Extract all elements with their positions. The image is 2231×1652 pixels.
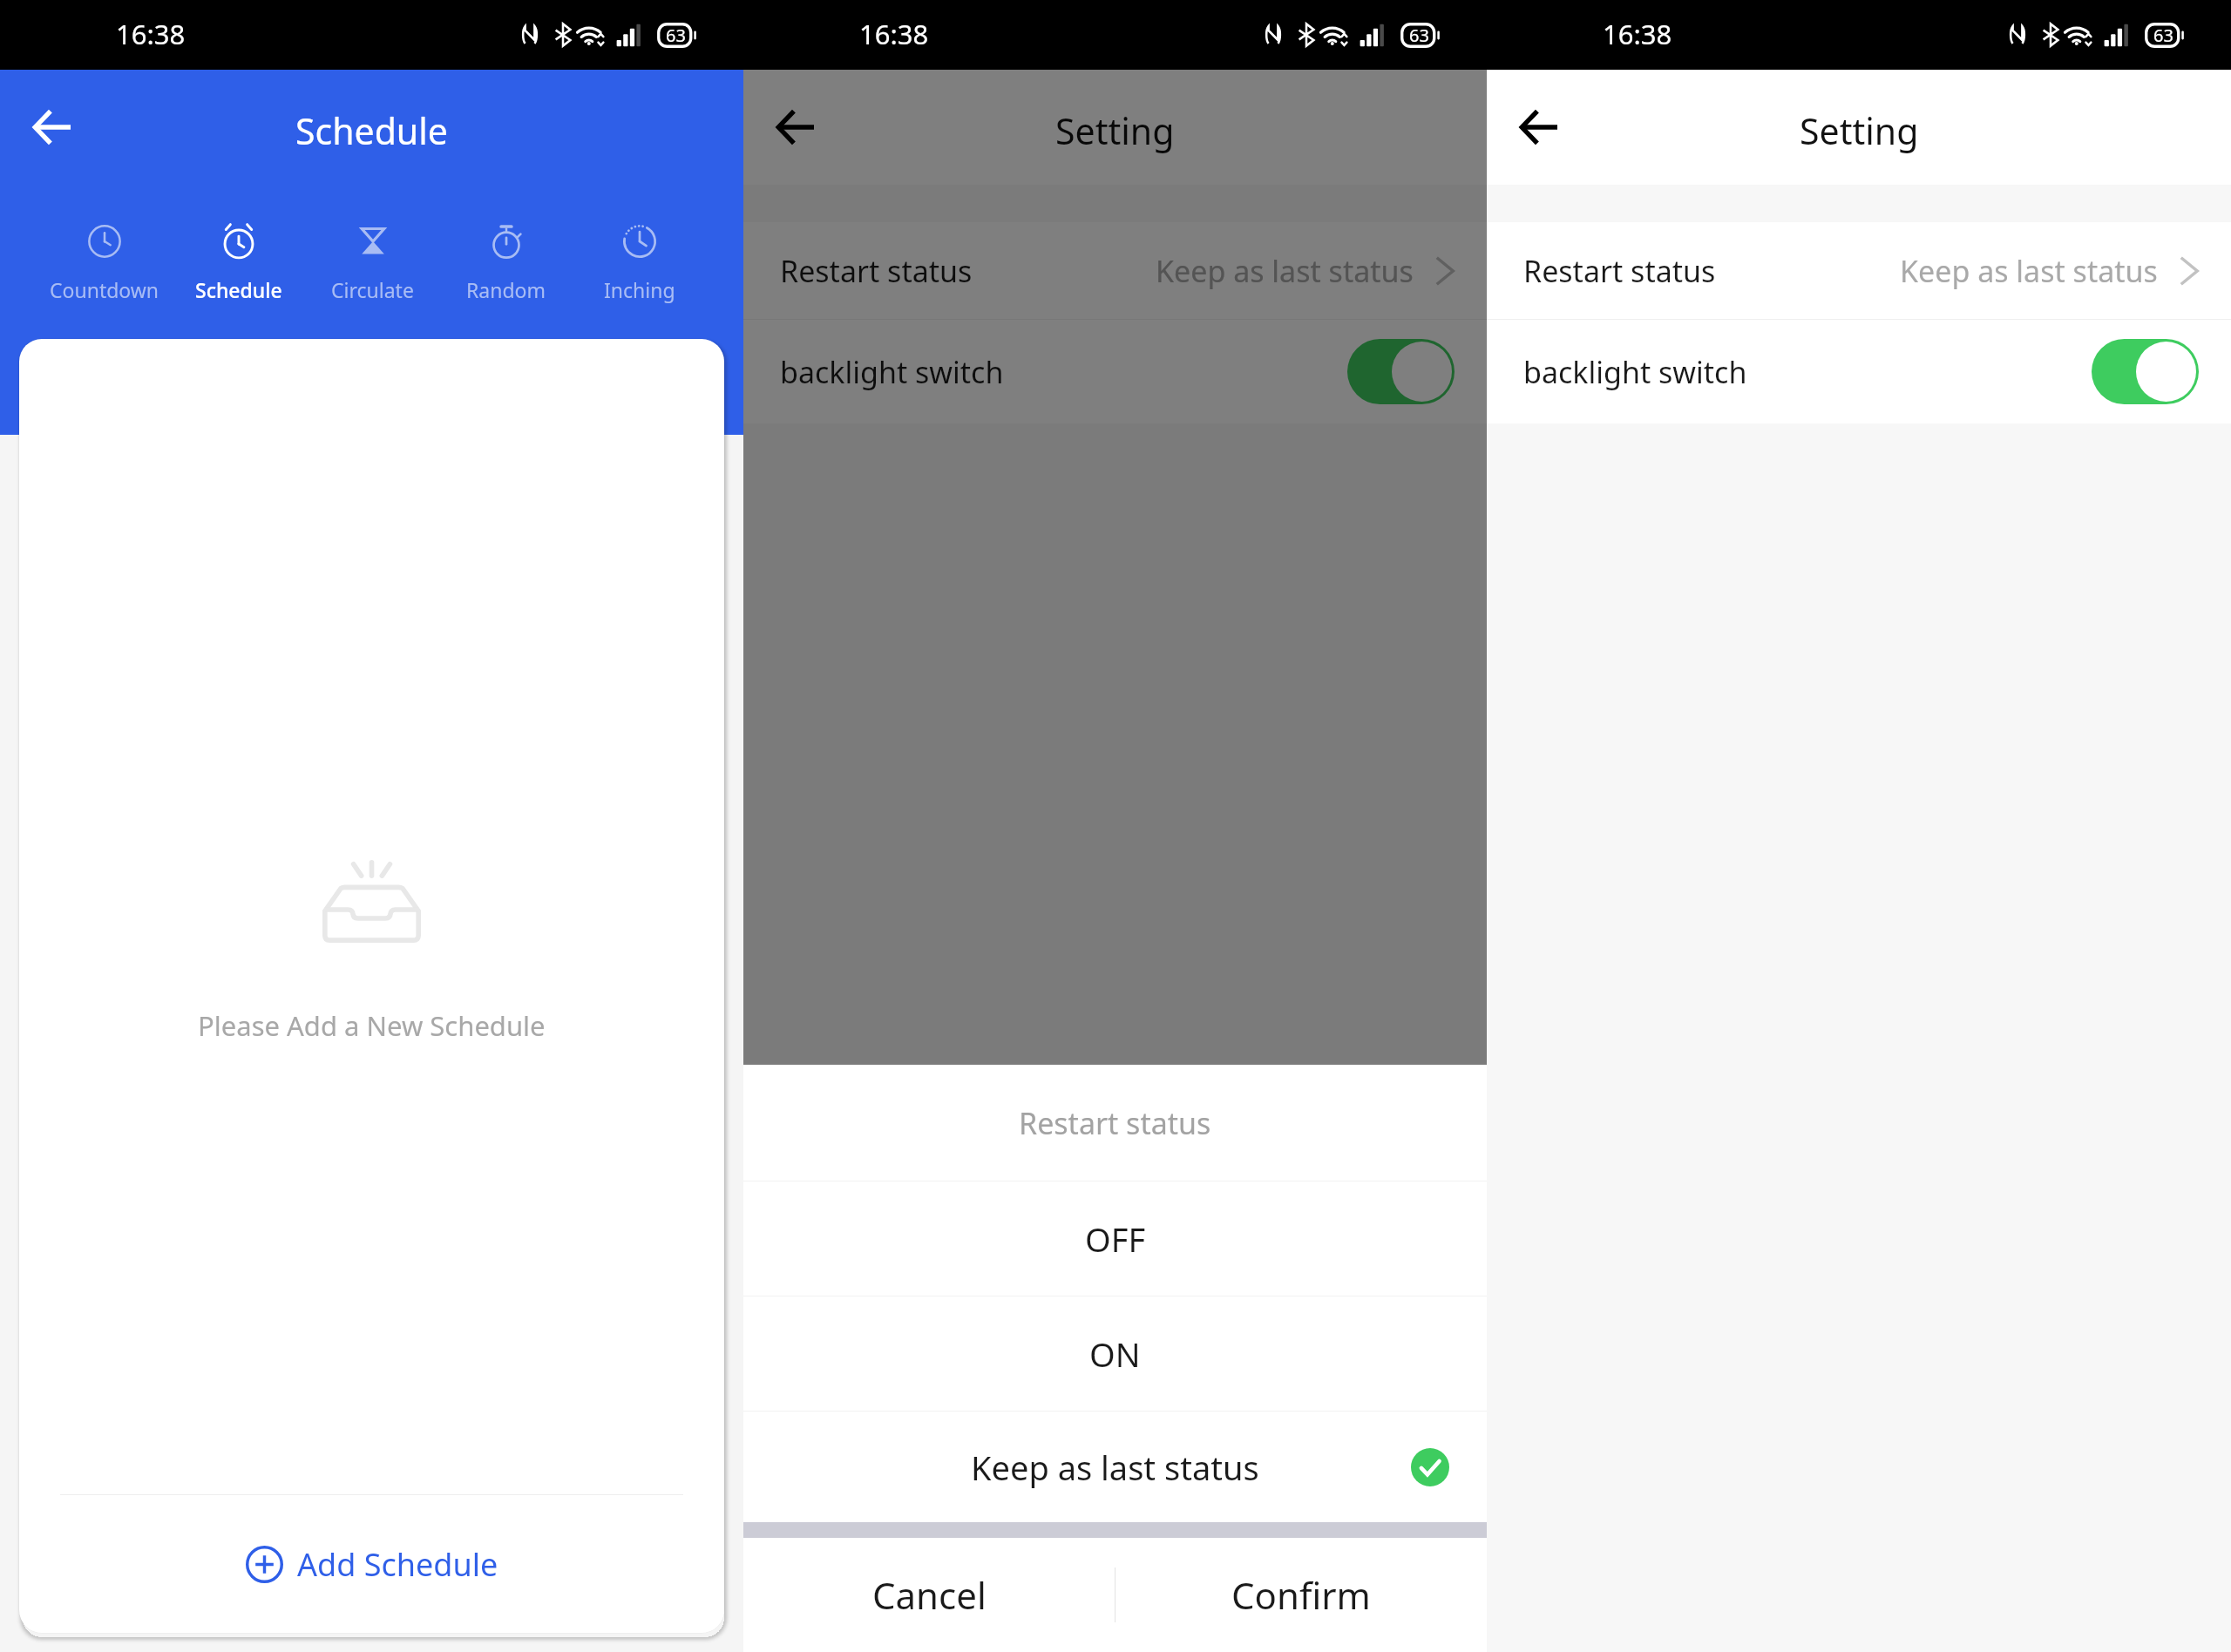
button[interactable]: backlight switch	[1487, 320, 2231, 423]
staticText: 63	[666, 24, 686, 47]
button[interactable]: backlight switch	[2092, 339, 2199, 404]
staticText: 16:38	[116, 16, 186, 52]
button[interactable]: OFF	[743, 1181, 1487, 1296]
staticText: OFF	[1085, 1216, 1146, 1262]
staticText: 63	[1409, 24, 1429, 47]
button[interactable]: ON	[743, 1297, 1487, 1411]
button[interactable]: Inching	[573, 223, 706, 303]
button[interactable]: Circulate	[306, 223, 439, 303]
staticText: Add Schedule	[297, 1543, 498, 1586]
button[interactable]: Confirm	[1115, 1538, 1487, 1652]
staticText: 63	[2153, 24, 2173, 47]
staticText: backlight switch	[1523, 352, 1747, 392]
button[interactable]: Countdown	[37, 223, 172, 303]
staticText: Countdown	[50, 276, 159, 303]
staticText: Schedule	[195, 276, 282, 303]
staticText: Keep as last status	[1900, 251, 2158, 291]
staticText: 16:38	[1603, 16, 1672, 52]
staticText: Keep as last status	[1156, 251, 1414, 291]
button[interactable]: backlight switch	[1347, 339, 1455, 404]
button[interactable]: backlight switch	[743, 320, 1487, 423]
staticText: 16:38	[859, 16, 929, 52]
staticText: Restart status	[780, 251, 973, 291]
staticText: Cancel	[872, 1570, 987, 1620]
button[interactable]: Back	[21, 96, 84, 159]
button[interactable]: Keep as last status	[743, 1412, 1487, 1522]
staticText: Restart status	[1523, 251, 1716, 291]
staticText: Keep as last status	[971, 1445, 1259, 1490]
button[interactable]: Schedule	[172, 223, 306, 303]
button[interactable]: Add Schedule	[19, 1495, 724, 1633]
staticText: Random	[466, 276, 546, 303]
button[interactable]: Back	[764, 96, 827, 159]
staticText: backlight switch	[780, 352, 1004, 392]
staticText: ON	[1089, 1331, 1141, 1377]
button[interactable]: Restart status	[1487, 222, 2231, 319]
staticText: Confirm	[1231, 1570, 1371, 1620]
staticText: Please Add a New Schedule	[198, 1007, 546, 1044]
button[interactable]: Back	[1508, 96, 1570, 159]
staticText: Setting	[1800, 106, 1919, 155]
staticText: Restart status	[1019, 1103, 1211, 1143]
button[interactable]: Random	[439, 223, 573, 303]
staticText: Inching	[604, 276, 675, 303]
staticText: Circulate	[331, 276, 414, 303]
button[interactable]: Restart status	[743, 222, 1487, 319]
button[interactable]: Cancel	[743, 1538, 1115, 1652]
staticText: Schedule	[295, 106, 448, 155]
staticText: Setting	[1055, 106, 1175, 155]
